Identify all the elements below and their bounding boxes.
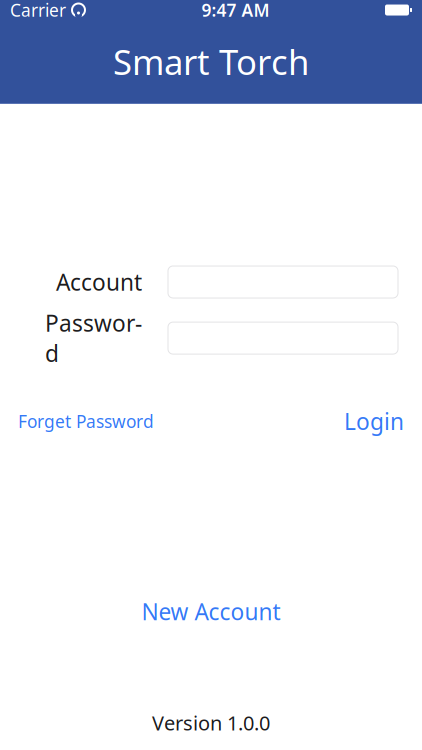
button[interactable]: New Account [141, 596, 280, 626]
button[interactable] [168, 266, 398, 298]
button[interactable]: Forget Password [18, 410, 154, 433]
staticText: Login [344, 406, 404, 436]
staticText: Forget Password [18, 410, 154, 433]
button[interactable]: Login [344, 406, 404, 436]
staticText: Smart Torch [113, 38, 309, 84]
staticText: Carrier [10, 0, 66, 21]
staticText: Account [56, 267, 142, 297]
staticText: Password [45, 308, 142, 368]
staticText: Version 1.0.0 [152, 709, 270, 736]
staticText: New Account [141, 596, 280, 626]
staticText: 9:47 AM [201, 0, 269, 21]
button[interactable] [168, 322, 398, 354]
